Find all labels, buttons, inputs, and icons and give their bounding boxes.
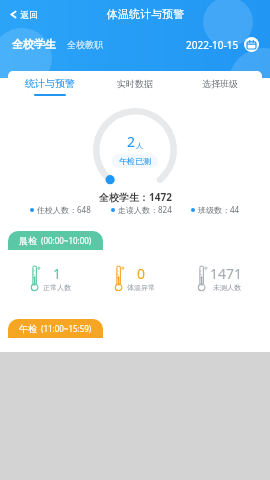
staticText: 1471	[210, 264, 243, 283]
staticText: (00:00~10:00)	[41, 235, 92, 246]
staticText: 统计与预警	[25, 77, 75, 90]
staticText: 走读人数：824	[118, 204, 172, 215]
staticText: 2	[127, 132, 136, 151]
button[interactable]: 返回	[7, 5, 41, 24]
staticText: 午检已测	[119, 156, 151, 166]
button[interactable]: 选择班级	[177, 71, 262, 102]
staticText: 晨检	[19, 235, 37, 246]
button[interactable]: 实时数据	[92, 71, 177, 102]
staticText: 人	[136, 141, 143, 150]
staticText: 全校教职	[67, 39, 103, 50]
staticText: 未测人数	[213, 283, 241, 292]
other: Pick date	[244, 37, 259, 52]
button[interactable]: 1471	[177, 264, 262, 292]
button[interactable]: 统计与预警	[8, 71, 92, 102]
staticText: 住校人数：648	[37, 204, 91, 215]
button[interactable]: 午检	[8, 319, 103, 338]
staticText: 班级数：44	[198, 204, 240, 215]
staticText: 正常人数	[43, 283, 71, 292]
staticText: 1	[53, 264, 62, 283]
button[interactable]: 0	[92, 264, 177, 292]
button[interactable]: 晨检	[8, 231, 103, 250]
button[interactable]: 2022-10-15	[186, 35, 259, 54]
staticText: 体温统计与预警	[107, 7, 184, 21]
staticText: 选择班级	[202, 78, 238, 89]
staticText: 0	[137, 264, 146, 283]
staticText: 全校学生：1472	[99, 190, 172, 204]
staticText: 实时数据	[117, 78, 153, 89]
button[interactable]: 午检已测	[112, 154, 158, 168]
button[interactable]: 1	[8, 264, 92, 292]
staticText: 2022-10-15	[186, 38, 239, 52]
staticText: 返回	[20, 9, 38, 20]
staticText: 体温异常	[127, 283, 155, 292]
staticText: (11:00~15:59)	[41, 323, 92, 334]
button[interactable]: 全校学生	[12, 34, 56, 54]
staticText: 全校学生	[12, 37, 56, 51]
staticText: 午检	[19, 323, 37, 334]
button[interactable]: 全校教职	[67, 36, 103, 53]
